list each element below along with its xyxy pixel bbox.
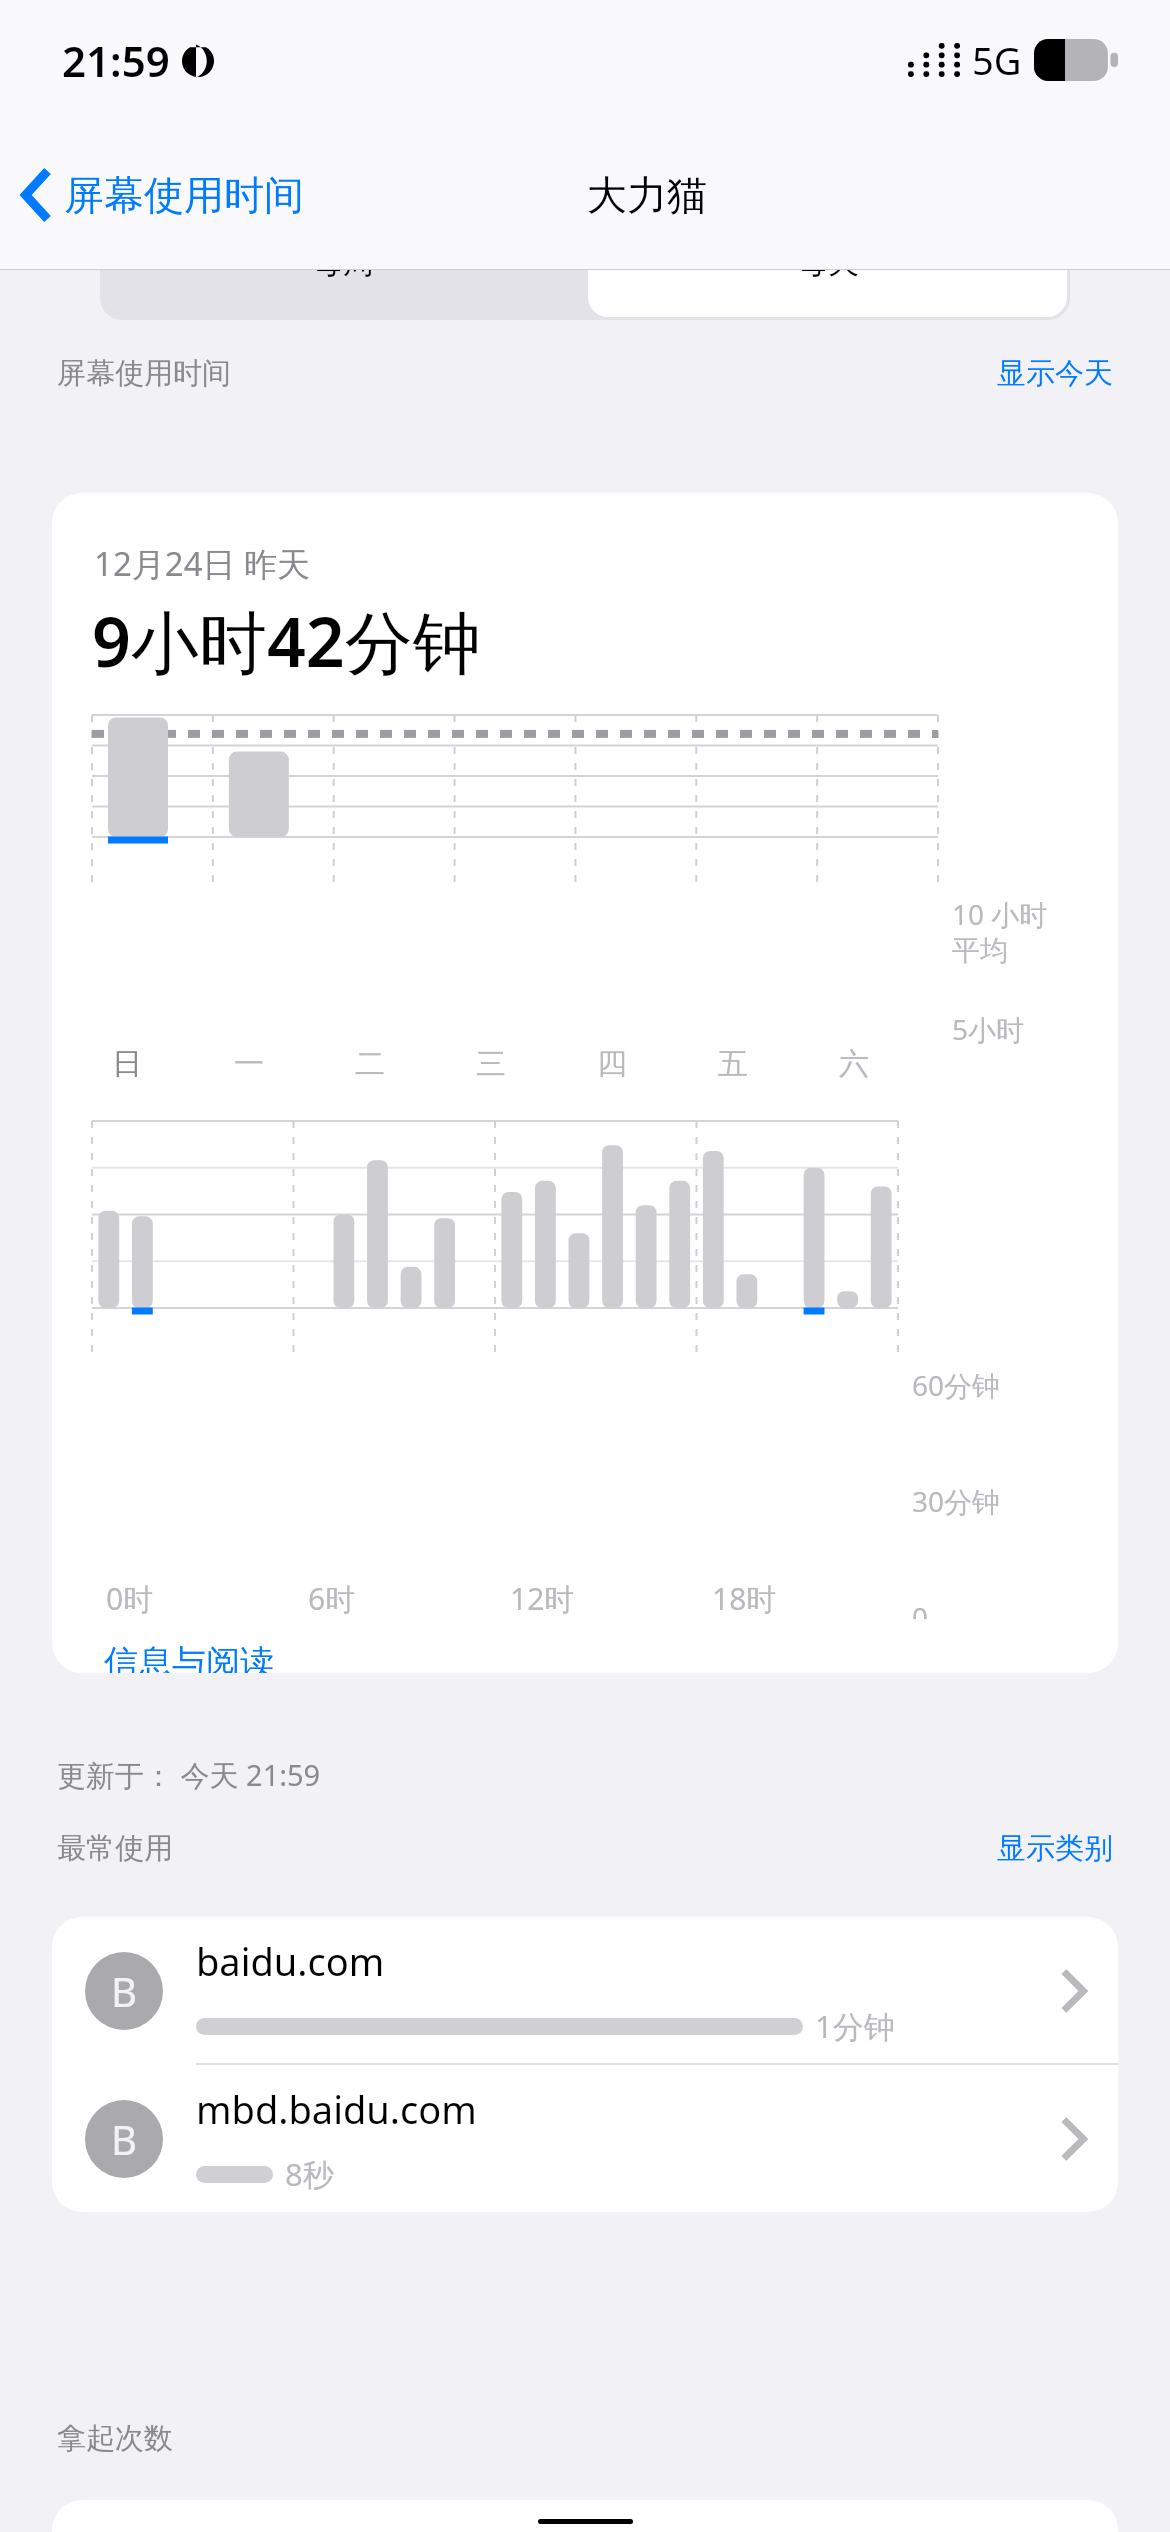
button[interactable]: 每周 <box>100 205 585 320</box>
staticText: 二 <box>355 1045 385 1083</box>
staticText: 6时 <box>308 1578 356 1619</box>
button[interactable]: 信息与阅读 <box>104 1641 274 1673</box>
staticText: 信息与阅读 <box>104 1641 274 1673</box>
staticText: 三 <box>476 1045 506 1083</box>
staticText: 每周 <box>312 243 374 282</box>
button[interactable]: B <box>52 1917 1118 2065</box>
staticText: 每天 <box>797 243 859 282</box>
staticText: 四 <box>597 1045 627 1083</box>
staticText: 30分钟 <box>912 1482 1001 1520</box>
staticText: 12月24日 昨天 <box>94 541 311 586</box>
staticText: 日 <box>112 1045 142 1083</box>
staticText: 0 <box>912 1598 929 1619</box>
staticText: 10 小时 <box>952 895 1048 933</box>
staticText: 21:59 <box>62 32 170 89</box>
staticText: 屏幕使用时间 <box>57 355 231 392</box>
staticText: B <box>111 2112 137 2166</box>
staticText: 5小时 <box>952 1010 1025 1048</box>
staticText: 拿起次数 <box>57 2420 173 2457</box>
staticText: 8秒 <box>285 2153 334 2195</box>
staticText: 5G <box>972 34 1022 86</box>
staticText: 更新于： 今天 21:59 <box>57 1755 321 1795</box>
staticText: 五 <box>718 1045 748 1083</box>
staticText: 六 <box>839 1045 869 1083</box>
staticText: 大力猫 <box>587 170 707 220</box>
staticText: 一 <box>234 1045 264 1083</box>
button[interactable]: 屏幕使用时间 <box>22 169 304 221</box>
button[interactable]: B <box>52 2065 1118 2212</box>
staticText: 屏幕使用时间 <box>64 170 304 220</box>
button[interactable]: 每天 <box>588 208 1067 317</box>
staticText: 0时 <box>106 1578 154 1619</box>
staticText: 最常使用 <box>57 1830 173 1867</box>
staticText: 9小时42分钟 <box>92 594 481 687</box>
staticText: 1分钟 <box>815 2005 895 2047</box>
staticText: 显示类别 <box>997 1830 1113 1867</box>
staticText: 12时 <box>510 1578 575 1619</box>
button[interactable]: 显示今天 <box>997 355 1113 392</box>
staticText: B <box>111 1964 137 2018</box>
staticText: 18时 <box>712 1578 777 1619</box>
staticText: baidu.com <box>196 1935 385 1987</box>
staticText: mbd.baidu.com <box>196 2083 477 2135</box>
staticText: 平均 <box>952 933 1008 968</box>
staticText: 显示今天 <box>997 355 1113 392</box>
button[interactable]: 显示类别 <box>997 1830 1113 1867</box>
staticText: 60分钟 <box>912 1366 1001 1404</box>
